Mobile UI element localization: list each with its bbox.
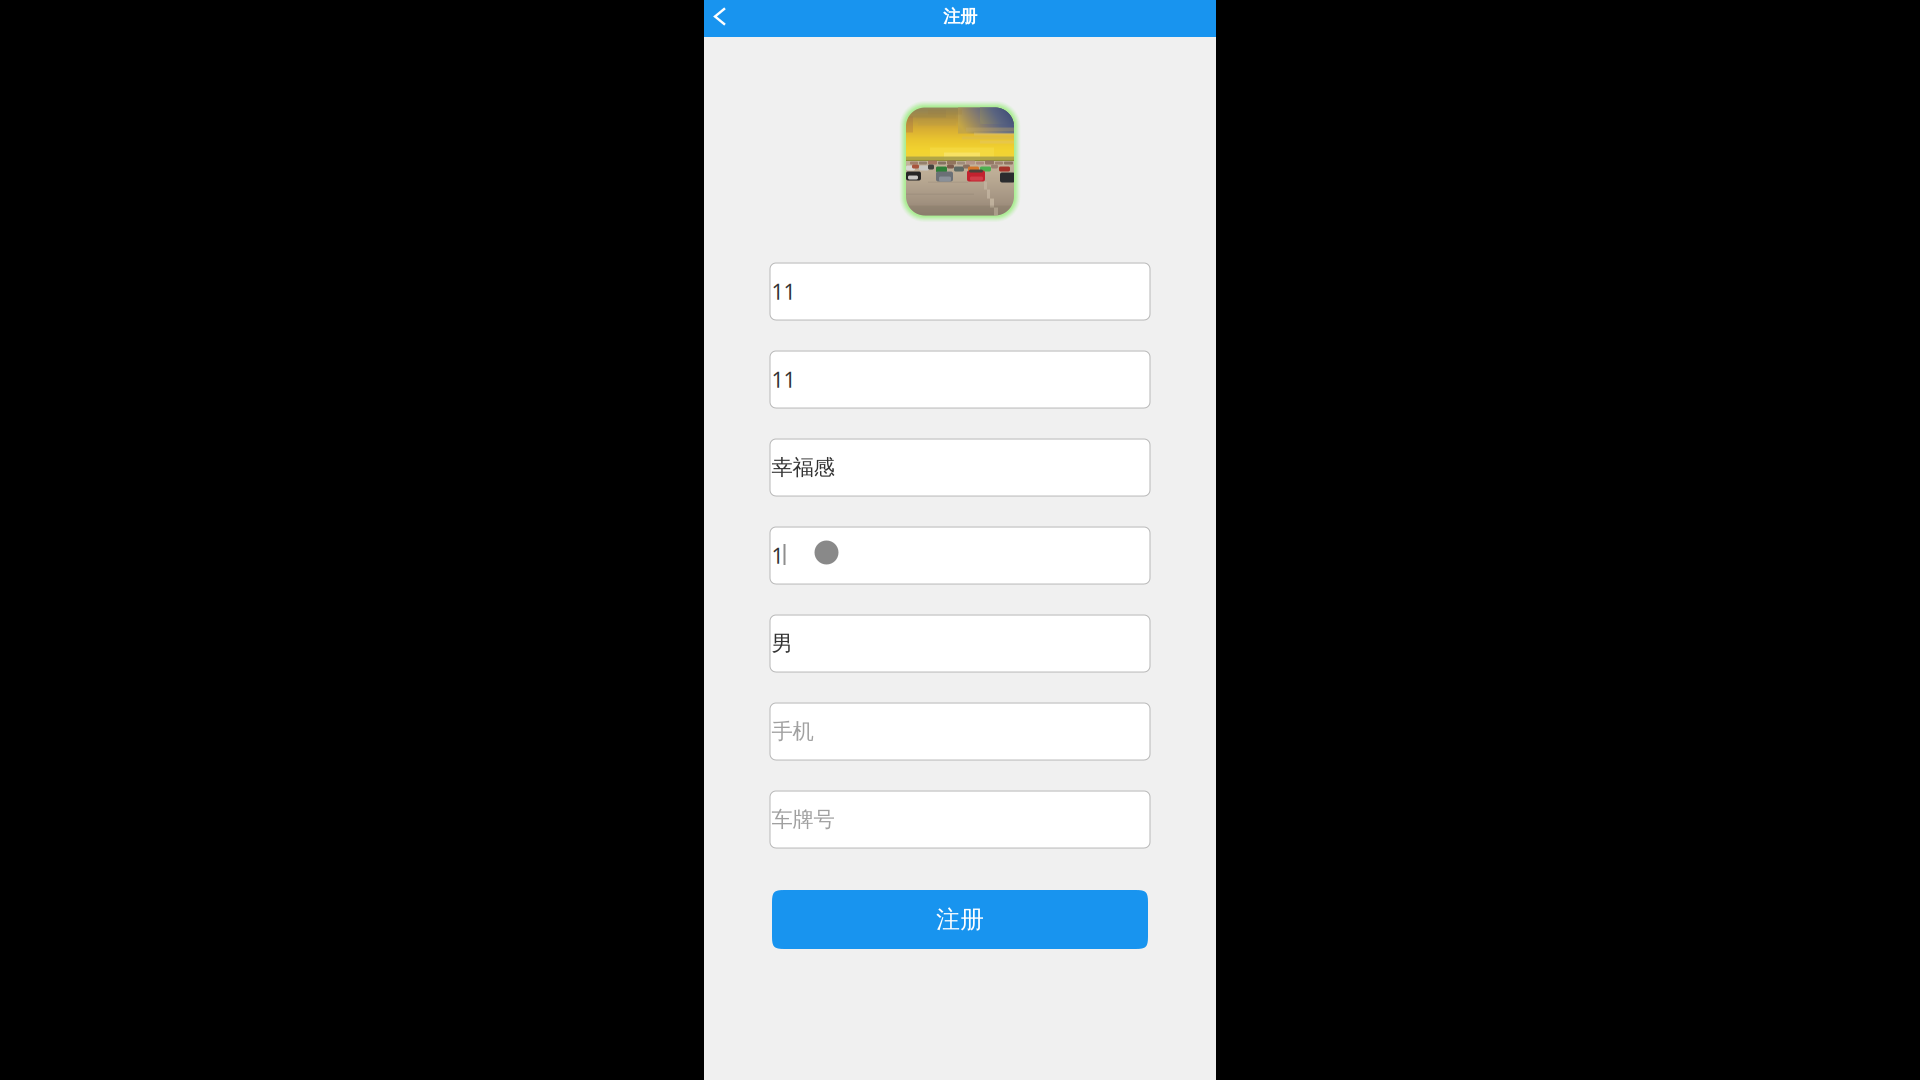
staticText: 11: [771, 277, 795, 306]
staticText: 车牌号: [771, 806, 834, 833]
button[interactable]: 11: [770, 351, 1150, 408]
button[interactable]: 11: [770, 263, 1150, 320]
staticText: 11: [771, 365, 795, 394]
button[interactable]: 手机: [770, 703, 1150, 760]
staticText: 男: [771, 630, 792, 657]
staticText: 注册: [936, 905, 984, 934]
button[interactable]: 注册: [772, 890, 1148, 949]
button[interactable]: 幸福感: [770, 439, 1150, 496]
button[interactable]: 车牌号: [770, 791, 1150, 848]
button[interactable]: 男: [770, 615, 1150, 672]
button[interactable]: 返回: [704, 0, 736, 37]
staticText: 注册: [943, 6, 977, 27]
staticText: 幸福感: [771, 454, 834, 481]
staticText: 手机: [771, 718, 813, 745]
staticText: 1: [771, 541, 783, 570]
button[interactable]: 头像: [899, 101, 1020, 222]
button[interactable]: 1: [770, 527, 1150, 584]
